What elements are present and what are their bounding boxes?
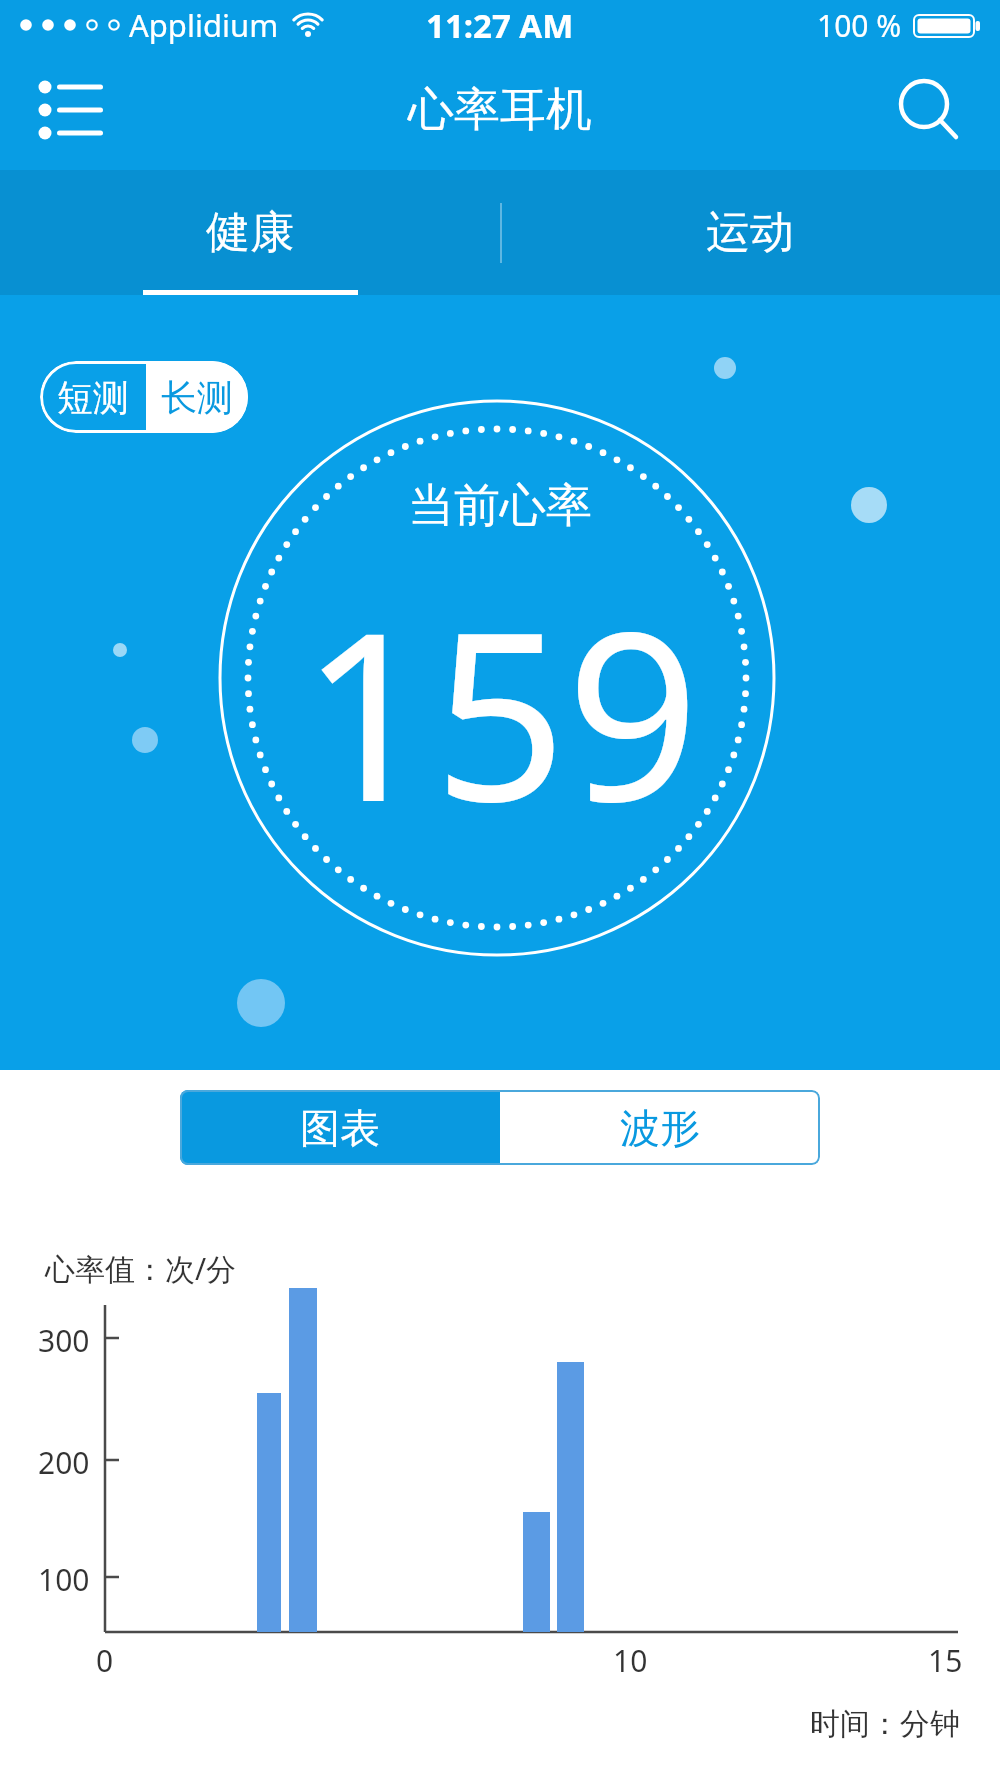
staticText: 图表 (300, 1103, 380, 1153)
staticText: 心率值：次/分 (45, 1248, 237, 1289)
button[interactable]: 短测 (40, 361, 146, 433)
staticText: Applidium (129, 4, 279, 46)
button[interactable]: 长测 (146, 361, 248, 433)
staticText: 200 (38, 1442, 90, 1483)
staticText: 心率耳机 (408, 81, 592, 139)
button[interactable]: 运动 (500, 170, 1000, 295)
staticText: 时间：分钟 (810, 1705, 960, 1743)
button[interactable] (890, 70, 970, 150)
staticText: 健康 (206, 205, 294, 260)
staticText: 11:27 AM (426, 3, 574, 48)
button[interactable]: 图表 (180, 1090, 500, 1165)
staticText: 100 % (817, 5, 902, 46)
staticText: 长测 (161, 375, 233, 420)
button[interactable]: 健康 (0, 170, 500, 295)
staticText: 运动 (706, 205, 794, 260)
staticText: 100 (38, 1559, 90, 1600)
staticText: 159 (301, 553, 700, 869)
staticText: 15 (928, 1640, 963, 1681)
button[interactable] (26, 70, 116, 150)
staticText: 短测 (57, 375, 129, 420)
button[interactable]: 波形 (500, 1090, 820, 1165)
staticText: 10 (613, 1640, 648, 1681)
staticText: 当前心率 (408, 477, 592, 535)
staticText: 0 (96, 1640, 114, 1681)
staticText: 300 (38, 1320, 90, 1361)
staticText: 波形 (620, 1103, 700, 1153)
